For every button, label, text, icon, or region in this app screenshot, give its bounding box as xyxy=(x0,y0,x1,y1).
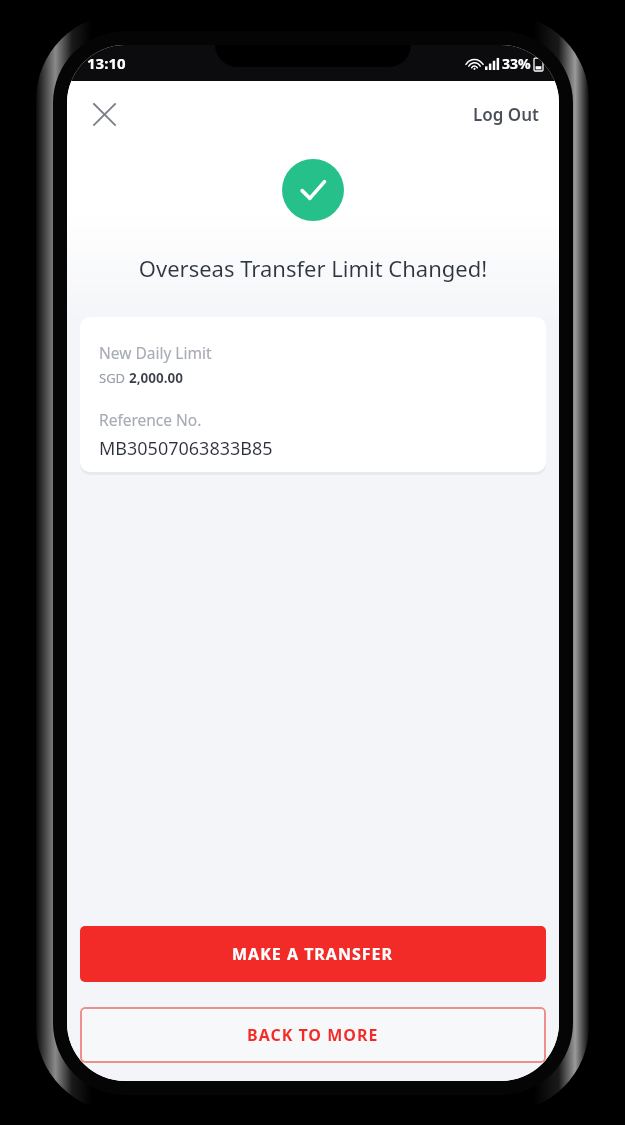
staticText: SGD xyxy=(99,369,129,387)
staticText: 13:10 xyxy=(87,53,126,73)
button[interactable]: MAKE A TRANSFER xyxy=(80,926,546,982)
button[interactable]: Close xyxy=(81,91,127,137)
staticText: Log Out xyxy=(473,103,539,126)
staticText: Reference No. xyxy=(99,409,202,430)
staticText: 2,000.00 xyxy=(129,369,183,387)
staticText: 33% xyxy=(502,54,531,73)
staticText: MB30507063833B85 xyxy=(99,436,273,461)
staticText: Overseas Transfer Limit Changed! xyxy=(83,253,543,283)
button[interactable]: BACK TO MORE xyxy=(80,1007,546,1063)
staticText: New Daily Limit xyxy=(99,342,212,363)
staticText: MAKE A TRANSFER xyxy=(232,943,394,965)
button[interactable]: Log Out xyxy=(465,97,547,132)
staticText: BACK TO MORE xyxy=(247,1024,379,1046)
